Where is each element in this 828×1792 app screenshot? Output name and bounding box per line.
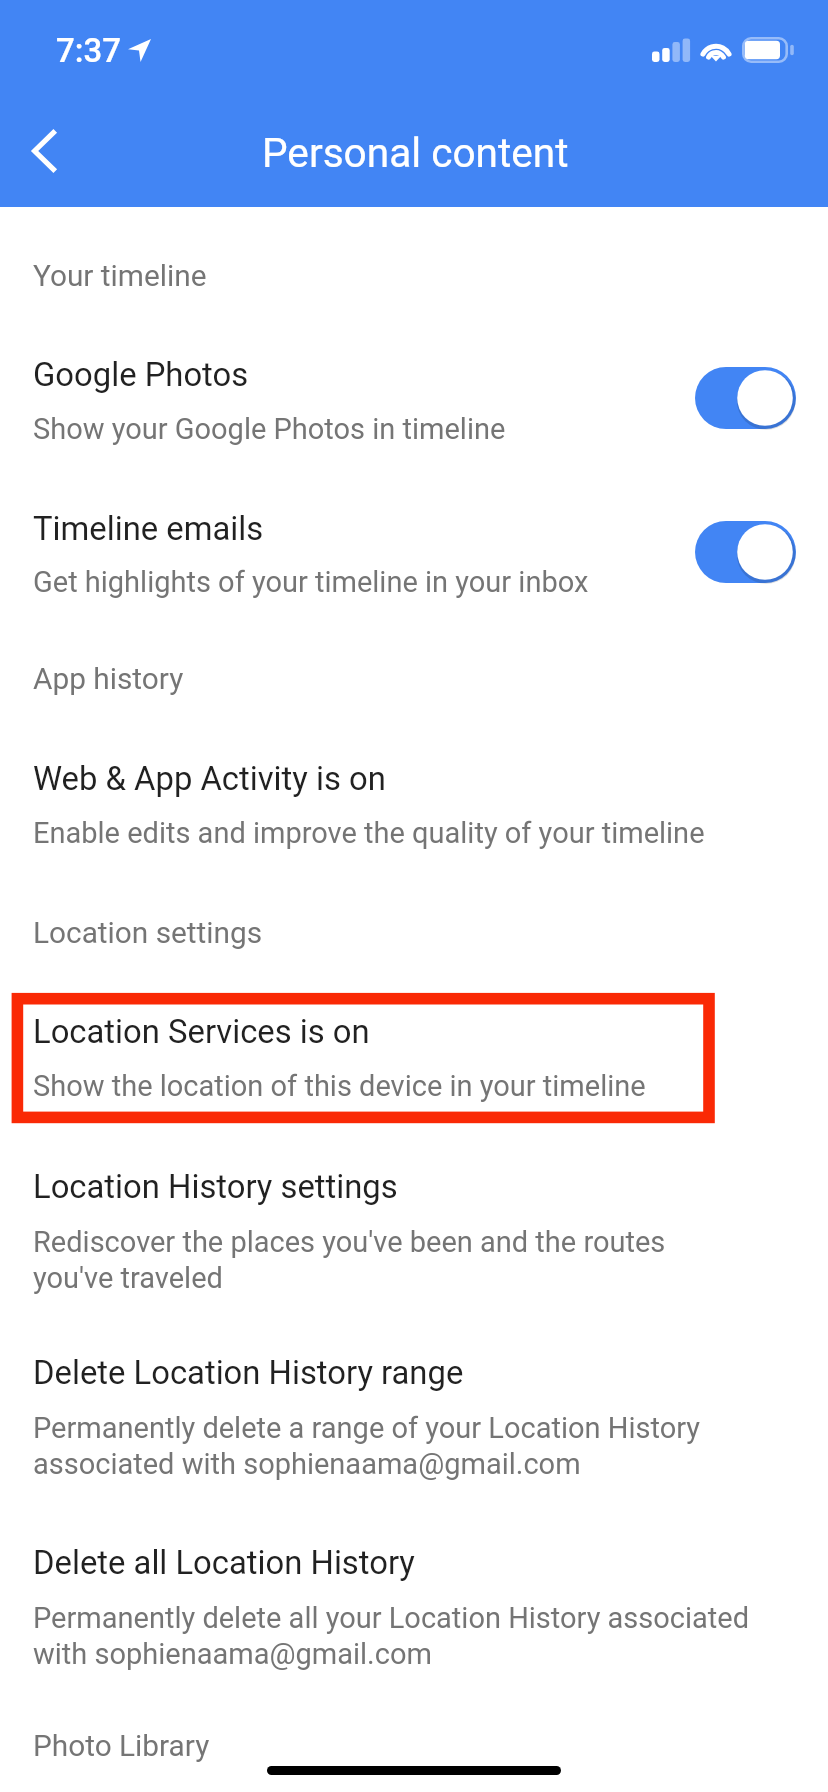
staticText: Your timeline (33, 258, 207, 293)
staticText: Show the location of this device in your… (33, 1069, 813, 1103)
staticText: Location Services is on (33, 1013, 370, 1051)
staticText: Permanently delete a range of your Locat… (33, 1411, 723, 1481)
staticText: Google Photos (33, 356, 249, 394)
staticText: Enable edits and improve the quality of … (33, 816, 813, 850)
button[interactable]: Location History settings (0, 1143, 828, 1293)
staticText: Rediscover the places you've been and th… (33, 1225, 693, 1295)
staticText: Photo Library (33, 1728, 210, 1763)
staticText: Show your Google Photos in timeline (33, 412, 673, 446)
button[interactable]: Timeline emails toggle (695, 521, 796, 583)
button[interactable]: Back (2, 109, 86, 193)
button[interactable]: Delete all Location History (0, 1519, 828, 1669)
button[interactable]: Web & App Activity is on (0, 735, 828, 847)
staticText: Location History settings (33, 1168, 398, 1206)
staticText: Delete Location History range (33, 1354, 464, 1392)
staticText: App history (33, 661, 184, 696)
staticText: Location settings (33, 915, 263, 950)
staticText: Delete all Location History (33, 1544, 415, 1582)
button[interactable]: Delete Location History range (0, 1329, 828, 1479)
staticText: Personal content (262, 129, 569, 177)
button[interactable]: Location Services is on (0, 988, 828, 1100)
button[interactable]: Google Photos (0, 330, 828, 442)
button[interactable]: Timeline emails (0, 484, 828, 596)
button[interactable]: Google Photos toggle (695, 367, 796, 429)
staticText: Web & App Activity is on (33, 760, 386, 798)
staticText: Get highlights of your timeline in your … (33, 565, 673, 599)
staticText: Permanently delete all your Location His… (33, 1601, 773, 1671)
staticText: Timeline emails (33, 510, 264, 548)
staticText: 7:37 (56, 31, 122, 70)
